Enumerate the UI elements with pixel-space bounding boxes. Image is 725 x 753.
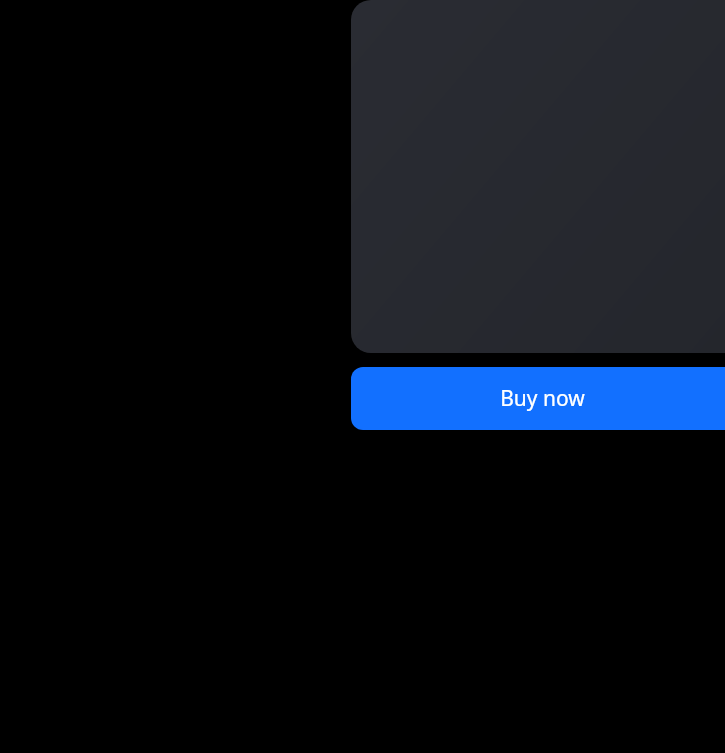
button[interactable]: Buy now (351, 367, 725, 430)
staticText: Buy now (500, 384, 585, 413)
